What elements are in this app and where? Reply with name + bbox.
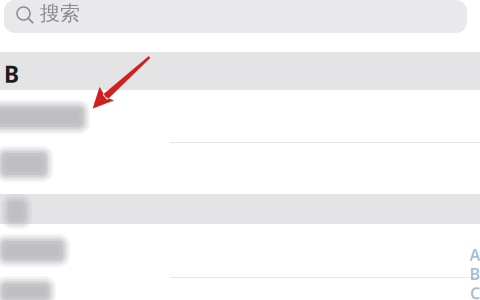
staticText: 搜索 [40, 1, 80, 26]
staticText: B [4, 59, 19, 89]
button[interactable]: Section index [469, 244, 480, 300]
button[interactable] [0, 224, 480, 277]
button[interactable] [0, 142, 480, 194]
button[interactable]: 搜索 [4, 0, 467, 33]
staticText: A [469, 244, 480, 265]
staticText: C [470, 282, 480, 300]
staticText: B [469, 263, 480, 284]
button[interactable] [0, 277, 480, 300]
button[interactable] [0, 90, 480, 142]
